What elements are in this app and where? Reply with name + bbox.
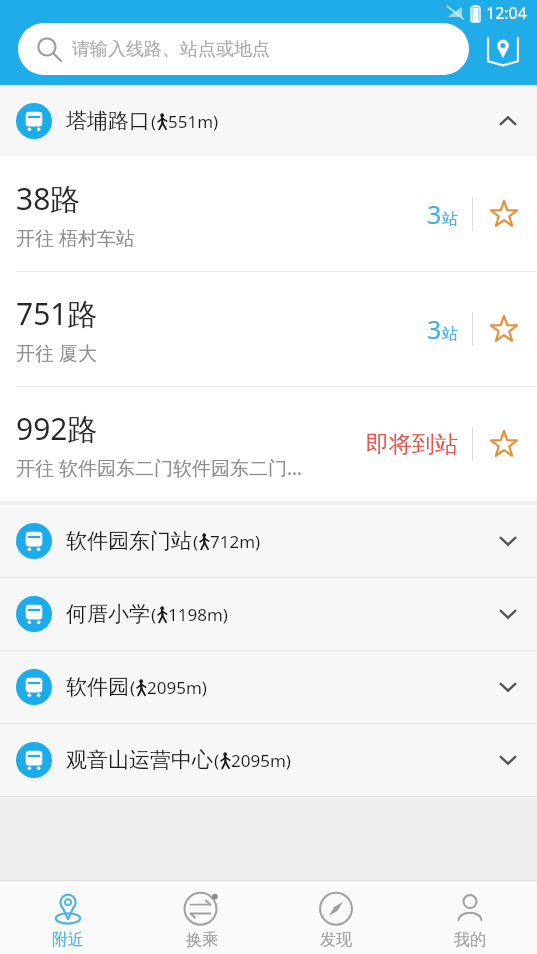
- other: Collapse: [495, 108, 521, 134]
- button[interactable]: 软件园: [0, 651, 537, 723]
- staticText: 附近: [52, 930, 84, 950]
- button[interactable]: 软件园东门站: [0, 505, 537, 577]
- staticText: 992路: [16, 408, 98, 449]
- staticText: (: [214, 749, 220, 772]
- staticText: 712m): [210, 530, 261, 553]
- staticText: (: [151, 603, 157, 626]
- staticText: 551m): [168, 110, 219, 133]
- staticText: 塔埔路口: [66, 108, 150, 134]
- staticText: 软件园东门站: [66, 528, 192, 554]
- other: Expand: [495, 528, 521, 554]
- staticText: 请输入线路、站点或地点: [72, 38, 270, 61]
- button[interactable]: 塔埔路口: [0, 85, 537, 157]
- button[interactable]: 我的: [403, 881, 537, 954]
- button[interactable]: Map: [479, 25, 527, 73]
- staticText: 软件园: [66, 674, 129, 700]
- button[interactable]: 附近: [0, 881, 135, 954]
- button[interactable]: 38路: [0, 157, 537, 272]
- other: Expand: [495, 747, 521, 773]
- staticText: 开往 软件园东二门软件园东二门…: [16, 455, 302, 481]
- staticText: 站: [442, 209, 458, 229]
- staticText: 38路: [16, 178, 81, 219]
- other: Expand: [495, 601, 521, 627]
- staticText: (: [130, 676, 136, 699]
- staticText: 3: [427, 197, 442, 231]
- button[interactable]: 发现: [269, 881, 403, 954]
- staticText: 2095m): [231, 749, 291, 772]
- button[interactable]: Favorite: [487, 312, 521, 346]
- staticText: 换乘: [186, 930, 218, 950]
- button[interactable]: 751路: [0, 272, 537, 387]
- staticText: 我的: [454, 930, 486, 950]
- button[interactable]: 请输入线路、站点或地点: [18, 23, 469, 75]
- staticText: 开往 梧村车站: [16, 225, 135, 251]
- button[interactable]: Favorite: [487, 427, 521, 461]
- staticText: 3: [427, 312, 442, 346]
- button[interactable]: 换乘: [135, 881, 269, 954]
- button[interactable]: 何厝小学: [0, 578, 537, 650]
- staticText: (: [193, 530, 199, 553]
- button[interactable]: 992路: [0, 387, 537, 501]
- staticText: 发现: [320, 930, 352, 950]
- staticText: 站: [442, 324, 458, 344]
- staticText: 1198m): [168, 603, 228, 626]
- staticText: 观音山运营中心: [66, 747, 213, 773]
- staticText: 何厝小学: [66, 601, 150, 627]
- button[interactable]: Favorite: [487, 197, 521, 231]
- button[interactable]: 观音山运营中心: [0, 724, 537, 796]
- other: Expand: [495, 674, 521, 700]
- staticText: (: [151, 110, 157, 133]
- staticText: 开往 厦大: [16, 340, 97, 366]
- staticText: 即将到站: [366, 430, 458, 459]
- staticText: 12:04: [486, 2, 527, 24]
- staticText: 751路: [16, 293, 98, 334]
- staticText: 2095m): [147, 676, 207, 699]
